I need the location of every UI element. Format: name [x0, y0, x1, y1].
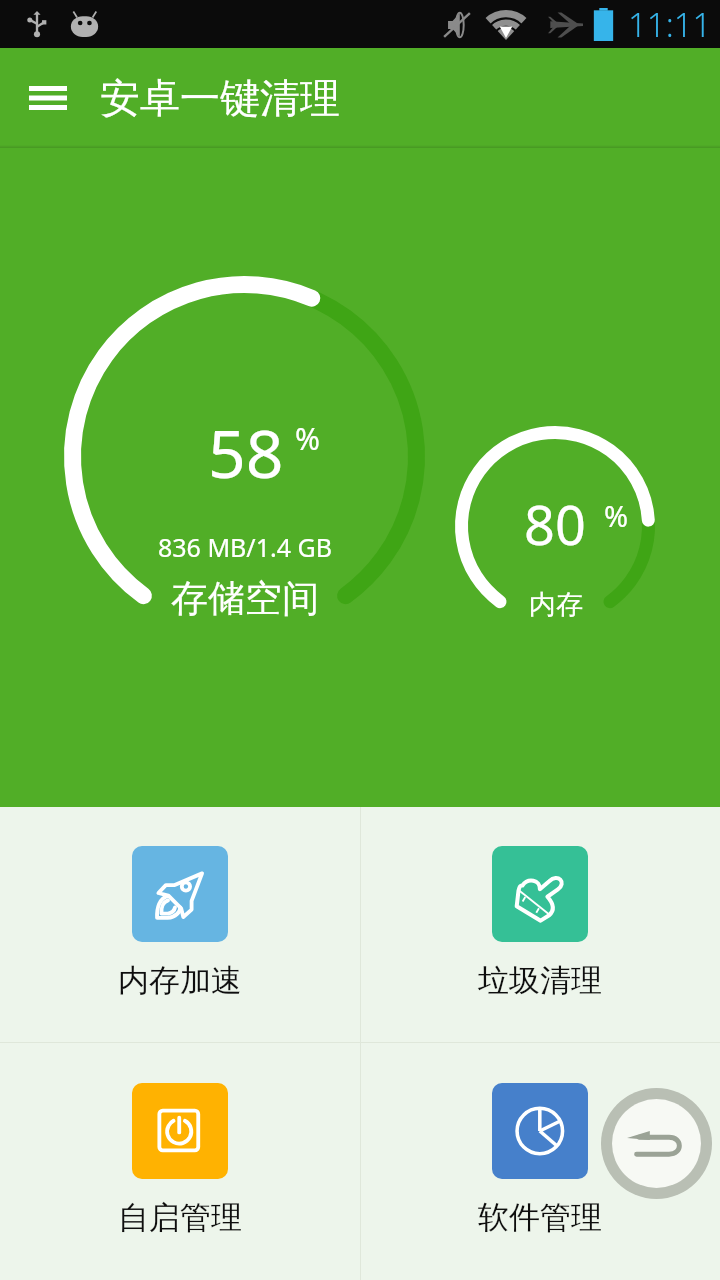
staticText: 836 MB/1.4 GB: [158, 530, 332, 564]
button[interactable]: 垃圾清理: [360, 807, 720, 1042]
staticText: 自启管理: [118, 1198, 242, 1237]
staticText: 垃圾清理: [478, 961, 602, 1000]
button[interactable]: 自启管理: [0, 1043, 360, 1280]
staticText: 内存: [529, 588, 583, 622]
staticText: 软件管理: [478, 1198, 602, 1237]
staticText: %: [604, 496, 629, 535]
staticText: 存储空间: [171, 575, 319, 622]
button[interactable]: 内存加速: [0, 807, 360, 1042]
button[interactable]: Menu: [12, 62, 84, 134]
staticText: %: [295, 418, 320, 459]
button[interactable]: Back: [601, 1088, 712, 1199]
staticText: 58: [208, 407, 284, 497]
staticText: 80: [524, 487, 586, 561]
staticText: 安卓一键清理: [100, 73, 340, 123]
staticText: 内存加速: [118, 961, 242, 1000]
staticText: 11:11: [628, 2, 712, 46]
button[interactable]: 软件管理: [360, 1043, 720, 1280]
